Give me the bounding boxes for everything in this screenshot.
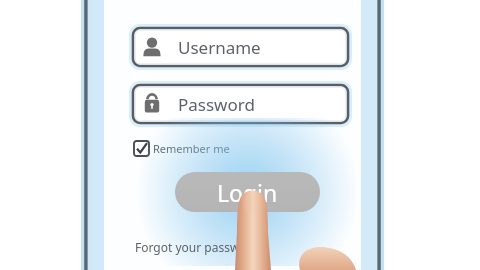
button[interactable]: Password field	[133, 85, 348, 123]
button[interactable]	[135, 239, 275, 255]
button[interactable]: Username field	[133, 28, 348, 66]
button[interactable]	[133, 140, 233, 157]
button[interactable]	[175, 172, 320, 212]
